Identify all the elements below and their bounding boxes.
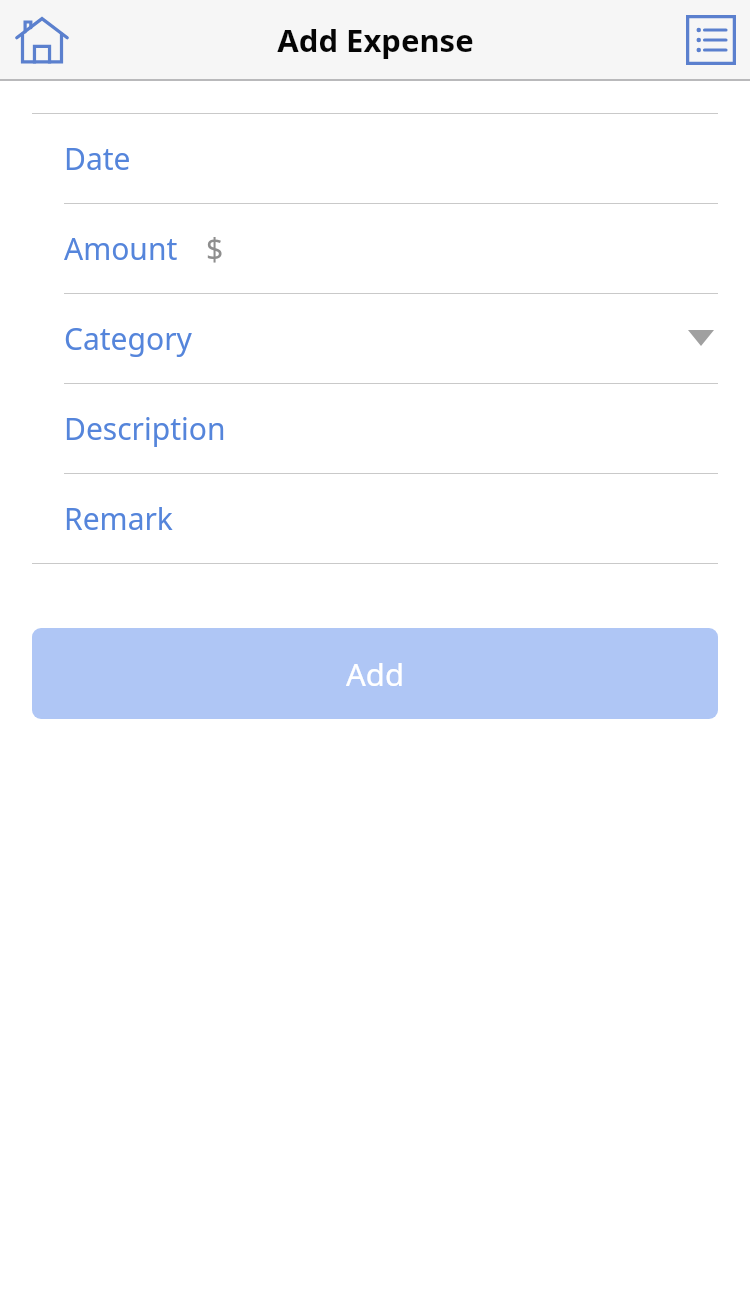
button[interactable]: Remark — [0, 474, 750, 563]
staticText: Remark — [64, 498, 173, 539]
button[interactable]: Category — [0, 294, 750, 383]
button[interactable]: Description — [0, 384, 750, 473]
staticText: Description — [64, 408, 226, 449]
staticText: Date — [64, 138, 131, 179]
button[interactable]: Date — [0, 114, 750, 203]
button[interactable]: List — [686, 15, 736, 65]
staticText: Category — [64, 318, 192, 359]
staticText: Add — [346, 653, 404, 695]
button[interactable]: Home — [16, 16, 68, 64]
staticText: Add Expense — [277, 19, 474, 61]
staticText: Amount — [64, 228, 178, 269]
button[interactable]: Amount — [0, 204, 750, 293]
button[interactable]: Add — [32, 628, 718, 719]
staticText: $ — [206, 228, 224, 269]
